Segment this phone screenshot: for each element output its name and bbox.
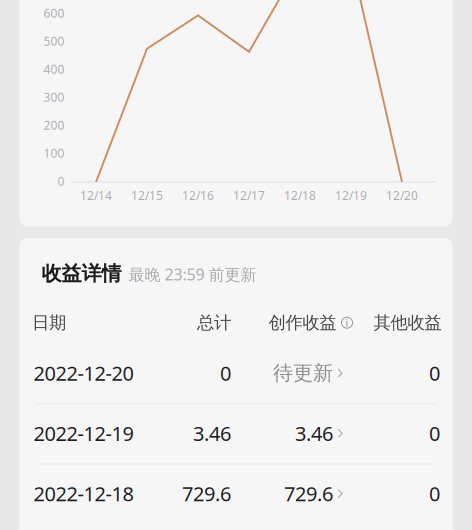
staticText: 600 xyxy=(43,5,64,21)
staticText: i xyxy=(345,316,348,330)
staticText: 12/18 xyxy=(284,187,316,203)
staticText: 500 xyxy=(43,33,64,49)
staticText: 总计 xyxy=(197,312,231,333)
staticText: 3.46 xyxy=(295,420,333,447)
staticText: 300 xyxy=(43,89,64,105)
staticText: 0 xyxy=(220,360,231,386)
staticText: 0 xyxy=(429,420,440,447)
staticText: 3.46 xyxy=(193,420,231,447)
staticText: 400 xyxy=(43,61,64,77)
staticText: 200 xyxy=(43,117,64,133)
staticText: 0 xyxy=(57,173,64,189)
staticText: 12/17 xyxy=(233,187,265,203)
staticText: 100 xyxy=(43,145,64,161)
staticText: 12/19 xyxy=(335,187,367,203)
staticText: 2022-12-20 xyxy=(33,360,133,386)
staticText: 2022-12-19 xyxy=(33,420,133,447)
staticText: 2022-12-18 xyxy=(33,480,133,507)
staticText: 创作收益 xyxy=(268,312,336,333)
staticText: 12/16 xyxy=(182,187,214,203)
button[interactable]: 2022-12-19 xyxy=(0,0,472,530)
button[interactable]: 2022-12-18 xyxy=(0,0,472,530)
staticText: 最晚 23:59 前更新 xyxy=(128,264,256,285)
staticText: 0 xyxy=(429,480,440,507)
staticText: 12/15 xyxy=(131,187,163,203)
button[interactable]: 2022-12-20 xyxy=(0,0,472,530)
button[interactable]: 收益详情 xyxy=(0,0,472,530)
staticText: 12/20 xyxy=(386,187,418,203)
staticText: 收益详情 xyxy=(41,261,121,286)
staticText: 729.6 xyxy=(182,480,231,507)
staticText: 其他收益 xyxy=(373,312,441,333)
staticText: 日期 xyxy=(32,312,66,333)
staticText: 729.6 xyxy=(284,480,333,507)
staticText: 0 xyxy=(429,360,440,386)
staticText: 12/14 xyxy=(80,187,112,203)
staticText: 待更新 xyxy=(273,361,333,385)
